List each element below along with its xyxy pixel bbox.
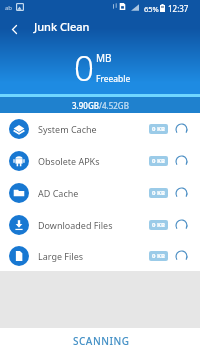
staticText: 0 KB: [152, 189, 165, 197]
staticText: 0 KB: [152, 125, 165, 133]
staticText: Freeable: [96, 73, 131, 85]
staticText: 0: [74, 44, 94, 92]
staticText: 65%: [144, 4, 159, 14]
staticText: Large Files: [38, 250, 84, 262]
staticText: 0 KB: [152, 221, 165, 229]
staticText: ab: [5, 4, 13, 12]
button[interactable]: Large Files: [0, 241, 200, 271]
button[interactable]: Downloaded Files: [0, 209, 200, 241]
button[interactable]: AD Cache: [0, 177, 200, 209]
button[interactable]: System Cache: [0, 113, 200, 145]
button[interactable]: Obsolete APKs: [0, 145, 200, 177]
staticText: 3.90GB: [72, 100, 99, 111]
button[interactable]: Back: [0, 15, 29, 44]
staticText: System Cache: [38, 123, 97, 135]
staticText: 0 KB: [152, 157, 165, 165]
staticText: SCANNING: [73, 334, 130, 348]
staticText: Junk Clean: [34, 19, 90, 34]
staticText: Downloaded Files: [38, 219, 113, 231]
staticText: AD Cache: [38, 187, 79, 199]
staticText: 0 KB: [152, 252, 165, 260]
staticText: Obsolete APKs: [38, 155, 100, 167]
staticText: /4.52GB: [99, 100, 129, 111]
button[interactable]: SCANNING: [0, 328, 200, 355]
staticText: 12:37: [168, 3, 189, 14]
staticText: MB: [96, 51, 112, 65]
